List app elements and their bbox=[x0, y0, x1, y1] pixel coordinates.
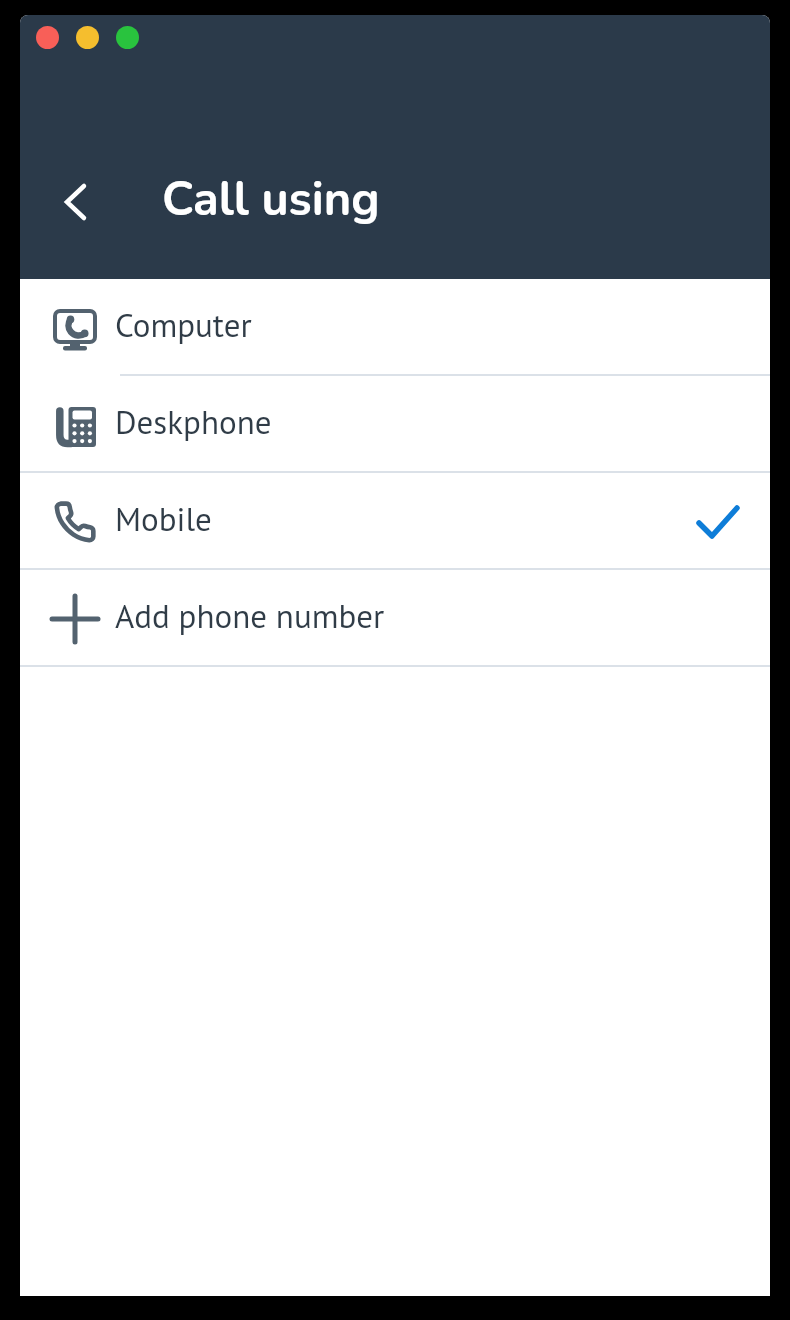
staticText: Deskphone bbox=[115, 400, 272, 443]
button[interactable]: Deskphone bbox=[20, 376, 770, 473]
staticText: Add phone number bbox=[115, 594, 385, 637]
staticText: Call using bbox=[162, 167, 380, 231]
staticText: Mobile bbox=[115, 497, 212, 540]
button[interactable]: Computer bbox=[20, 279, 770, 376]
button[interactable]: Mobile bbox=[20, 473, 770, 570]
staticText: Computer bbox=[115, 303, 252, 346]
button[interactable] bbox=[54, 180, 98, 224]
button[interactable]: Add phone number bbox=[20, 570, 770, 667]
